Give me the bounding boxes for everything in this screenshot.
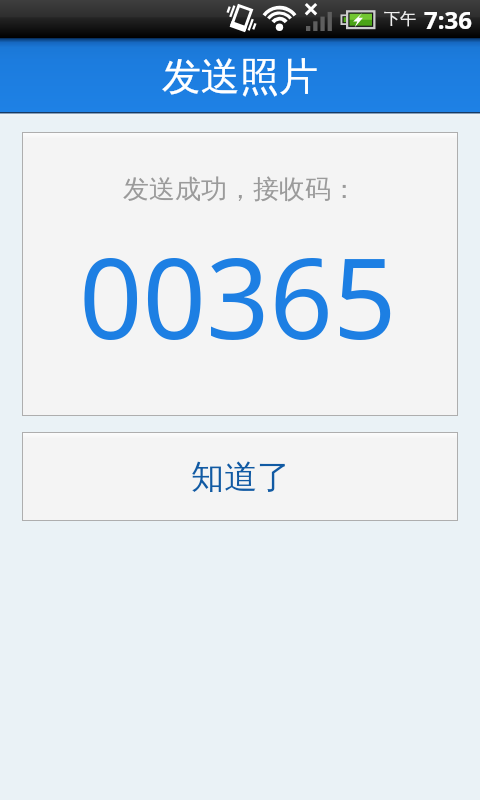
staticText: 知道了: [191, 456, 290, 498]
staticText: 00365: [79, 220, 397, 371]
staticText: 下午: [384, 9, 416, 29]
other: Status bar: [0, 0, 480, 38]
staticText: 发送成功，接收码：: [123, 173, 357, 206]
staticText: 7:36: [424, 3, 472, 36]
button[interactable]: 知道了: [23, 433, 457, 520]
staticText: 发送照片: [162, 52, 318, 101]
